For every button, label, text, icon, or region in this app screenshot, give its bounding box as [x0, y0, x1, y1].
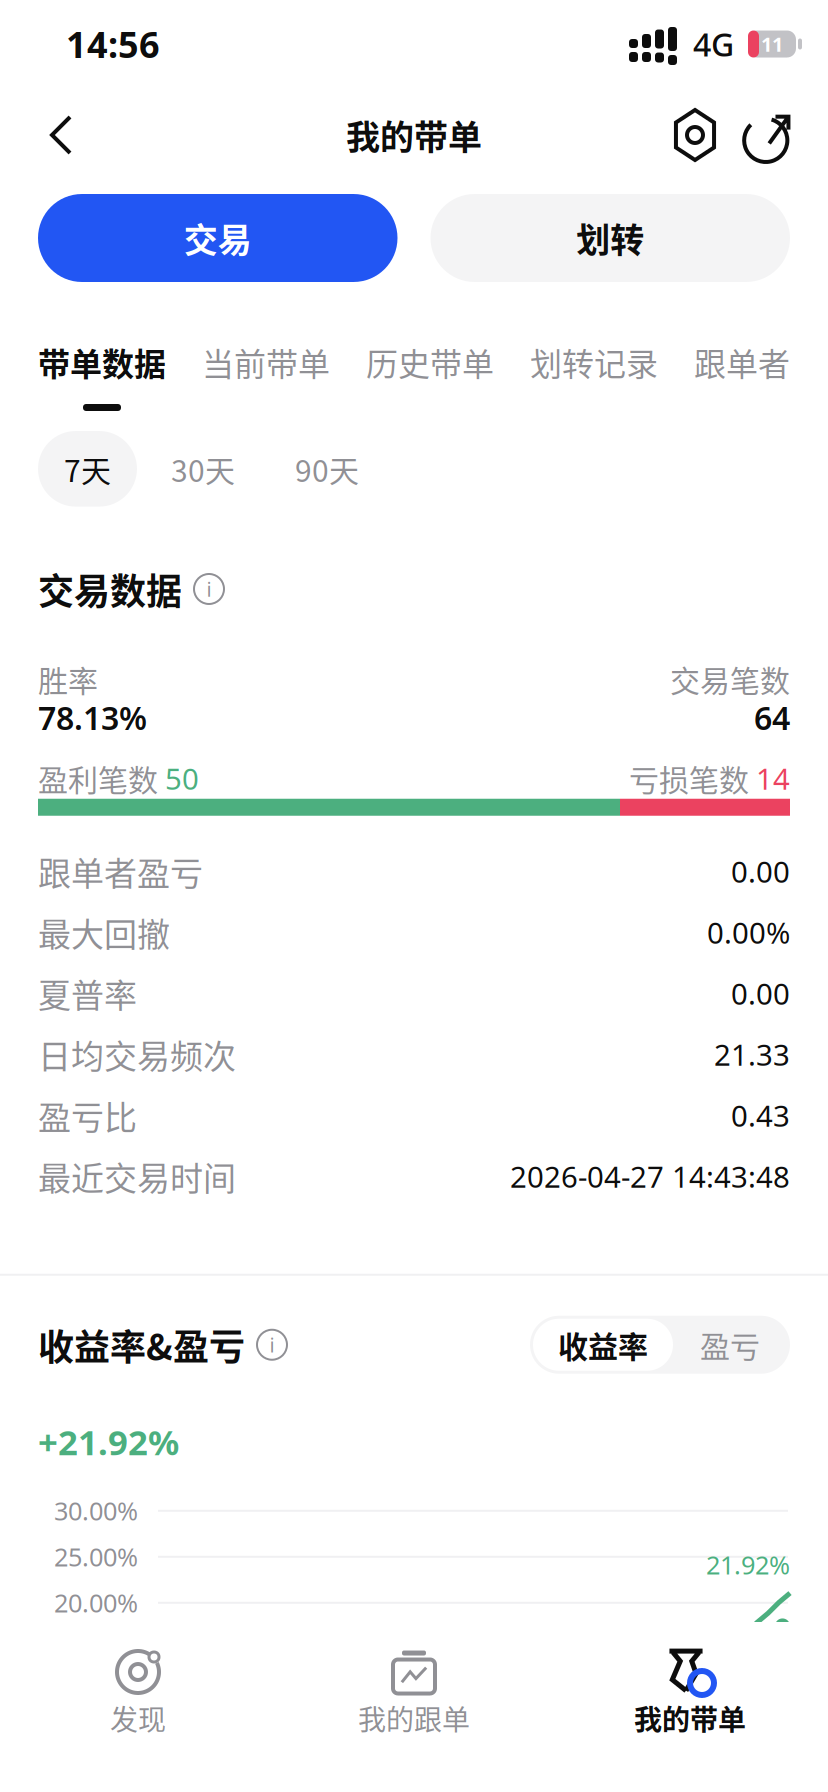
- button[interactable]: 收益率: [533, 1319, 673, 1371]
- staticText: 划转记录: [530, 343, 658, 381]
- staticText: 最近交易时间: [38, 1157, 236, 1196]
- button[interactable]: 我的跟单: [276, 1646, 552, 1738]
- staticText: 14: [756, 759, 790, 798]
- staticText: 盈亏: [700, 1327, 760, 1362]
- staticText: 交易笔数: [670, 665, 790, 692]
- staticText: 亏损笔数: [629, 760, 756, 796]
- staticText: 我的跟单: [358, 1702, 470, 1734]
- staticText: 发现: [110, 1702, 166, 1734]
- staticText: 最大回撤: [38, 913, 170, 952]
- button[interactable]: 盈亏: [673, 1319, 787, 1371]
- staticText: 14:56: [66, 20, 160, 68]
- staticText: 划转: [576, 213, 644, 263]
- staticText: 胜率: [38, 665, 98, 692]
- staticText: 日均交易频次: [38, 1035, 236, 1074]
- button[interactable]: 7天: [38, 431, 137, 507]
- staticText: 20.00%: [54, 1586, 138, 1620]
- staticText: 21.33: [714, 1035, 790, 1074]
- staticText: i: [206, 576, 211, 602]
- staticText: 盈利笔数: [38, 760, 165, 796]
- staticText: 0.43: [731, 1096, 790, 1135]
- staticText: 跟单者: [694, 343, 790, 381]
- button[interactable]: 设置: [664, 100, 726, 170]
- staticText: 4G: [693, 23, 734, 65]
- staticText: 盈亏比: [38, 1096, 137, 1135]
- staticText: 0.00: [731, 974, 790, 1013]
- button[interactable]: 划转: [430, 194, 790, 282]
- staticText: 带单数据: [38, 343, 166, 381]
- staticText: 收益率: [558, 1327, 648, 1362]
- staticText: 64: [754, 696, 790, 739]
- staticText: 25.00%: [54, 1540, 138, 1574]
- staticText: 交易: [184, 213, 252, 263]
- button[interactable]: 90天: [269, 431, 385, 507]
- button[interactable]: 我的带单: [552, 1646, 828, 1738]
- staticText: 78.13%: [38, 696, 147, 739]
- staticText: 当前带单: [202, 343, 330, 381]
- staticText: 21.92%: [706, 1548, 790, 1581]
- staticText: 11: [761, 31, 783, 57]
- staticText: 50: [165, 759, 199, 798]
- staticText: 0.00%: [707, 913, 790, 952]
- button[interactable]: 交易: [38, 194, 397, 282]
- staticText: 交易数据: [38, 568, 182, 610]
- staticText: 7天: [64, 451, 111, 487]
- staticText: 30天: [171, 451, 235, 487]
- button[interactable]: 返回: [30, 100, 92, 170]
- staticText: 30.00%: [54, 1494, 138, 1528]
- staticText: i: [269, 1331, 274, 1358]
- staticText: 跟单者盈亏: [38, 852, 203, 891]
- button[interactable]: 30天: [145, 431, 261, 507]
- staticText: 历史带单: [366, 343, 494, 381]
- button[interactable]: 分享: [738, 100, 800, 170]
- staticText: 夏普率: [38, 974, 137, 1013]
- staticText: 收益率&盈亏: [38, 1323, 245, 1366]
- staticText: 我的带单: [634, 1702, 746, 1734]
- staticText: +21.92%: [38, 1419, 179, 1465]
- staticText: 2026-04-27 14:43:48: [510, 1157, 790, 1196]
- staticText: 90天: [295, 451, 359, 487]
- staticText: 我的带单: [346, 110, 482, 160]
- staticText: 0.00: [731, 852, 790, 891]
- button[interactable]: 发现: [0, 1646, 276, 1738]
